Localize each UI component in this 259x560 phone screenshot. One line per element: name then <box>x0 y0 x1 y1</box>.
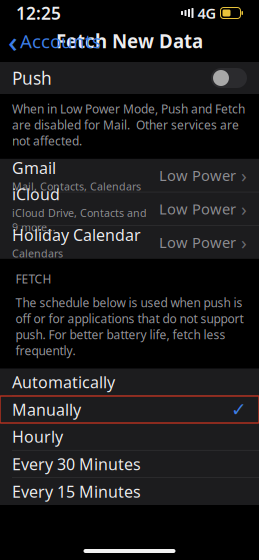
staticText: The schedule below is used when push is … <box>15 295 243 358</box>
staticText: 12:25 <box>16 1 61 24</box>
staticText: › <box>241 230 247 255</box>
staticText: Every 30 Minutes <box>12 453 141 475</box>
staticText: Mail, Contacts, Calendars <box>12 179 141 193</box>
staticText: Gmail <box>12 157 56 178</box>
staticText: ‹ <box>8 21 18 60</box>
staticText: › <box>241 163 247 188</box>
staticText: Low Power <box>159 233 236 252</box>
staticText: Low Power <box>159 199 236 219</box>
button[interactable]: Manually <box>0 396 259 423</box>
staticText: iCloud Drive, Contacts and 9 more… <box>12 206 147 234</box>
staticText: Holiday Calendar <box>12 224 141 245</box>
button[interactable]: ‹ <box>0 17 109 64</box>
staticText: ✓ <box>231 399 247 420</box>
staticText: Hourly <box>12 426 63 447</box>
staticText: FETCH <box>15 271 51 287</box>
staticText: Manually <box>12 399 81 420</box>
staticText: Every 15 Minutes <box>12 481 141 502</box>
staticText: Accounts <box>20 29 101 53</box>
button[interactable]: Every 30 Minutes <box>0 450 259 478</box>
staticText: Automatically <box>12 371 115 393</box>
button[interactable]: Every 15 Minutes <box>0 478 259 505</box>
staticText: Low Power <box>159 166 236 185</box>
staticText: 4G <box>197 3 216 23</box>
button[interactable]: Holiday Calendar <box>0 226 259 259</box>
staticText: Push <box>12 66 52 89</box>
staticText: iCloud <box>12 183 60 205</box>
staticText: When in Low Power Mode, Push and Fetch a… <box>12 101 245 149</box>
staticText: › <box>241 196 247 221</box>
staticText: Fetch New Data <box>56 29 203 53</box>
button[interactable]: Push <box>211 68 247 88</box>
button[interactable]: Gmail <box>0 159 259 192</box>
button[interactable]: Hourly <box>0 423 259 450</box>
staticText: Calendars <box>12 246 63 260</box>
button[interactable]: iCloud <box>0 192 259 226</box>
button[interactable]: Automatically <box>0 368 259 396</box>
